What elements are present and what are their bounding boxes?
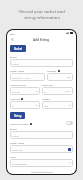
staticText: Yonex [12, 62, 71, 65]
button[interactable]: Multifilament [10, 159, 73, 167]
button[interactable]: Yonex [10, 59, 73, 67]
staticText: Yonex [12, 134, 71, 137]
staticText: 97 [44, 90, 65, 93]
staticText: Record your racket and string informatio… [19, 9, 65, 21]
staticText: Head Size [42, 83, 53, 86]
staticText: pcs [67, 76, 71, 79]
staticText: sq.in. [65, 90, 71, 93]
button[interactable]: 26 x 28 [10, 87, 40, 95]
button[interactable]: Exbolt 65 [10, 145, 73, 153]
staticText: Type [10, 155, 16, 158]
staticText: Add String [33, 38, 49, 42]
button[interactable]: Arcsaber 11 Pro [10, 73, 45, 81]
staticText: Grip Size [10, 97, 20, 100]
staticText: String Tension [10, 83, 27, 86]
staticText: 9:41 [10, 32, 15, 35]
staticText: Model Name [10, 141, 25, 144]
button[interactable]: Back [10, 37, 15, 42]
button[interactable]: 97 [42, 87, 73, 95]
button[interactable]: 1 [47, 73, 73, 81]
button[interactable]: Yonex [10, 131, 73, 139]
staticText: Hybrid Stringing [10, 122, 29, 125]
staticText: String [14, 114, 22, 117]
staticText: Exbolt 65 [12, 148, 68, 151]
staticText: Racket [14, 47, 23, 50]
button[interactable]: Racket [10, 45, 26, 52]
staticText: Brand [10, 55, 17, 58]
staticText: lb [36, 90, 38, 93]
button[interactable]: 2 [10, 101, 40, 109]
staticText: Weight [42, 97, 50, 100]
staticText: 305 [44, 104, 69, 107]
button[interactable]: String [10, 112, 25, 119]
staticText: Multifilament [12, 162, 69, 165]
staticText: Brand [10, 127, 17, 130]
button[interactable]: Hybrid Stringing [10, 121, 73, 125]
staticText: 2 [12, 104, 36, 107]
button[interactable]: 305 [42, 101, 73, 109]
staticText: Number [47, 69, 57, 72]
staticText: Arcsaber 11 Pro [12, 76, 43, 79]
staticText: 1 [49, 76, 67, 79]
staticText: Model Name [10, 69, 25, 72]
staticText: 26 x 28 [12, 90, 36, 93]
staticText: G [36, 104, 38, 107]
staticText: g [69, 104, 71, 107]
